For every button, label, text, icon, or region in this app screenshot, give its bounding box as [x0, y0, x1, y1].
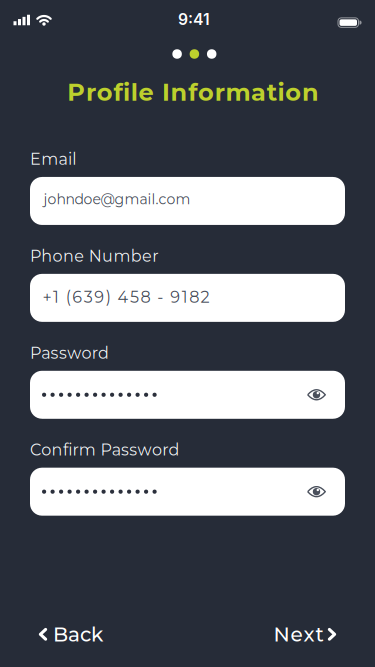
staticText: o [53, 246, 63, 266]
button[interactable]: + [30, 274, 345, 322]
staticText: @ [100, 191, 114, 208]
staticText: s [129, 440, 137, 460]
staticText: i [68, 440, 72, 460]
staticText: j [43, 191, 47, 208]
staticText: r [215, 77, 225, 107]
staticText: . [155, 191, 158, 208]
button[interactable]: N [273, 622, 336, 646]
staticText: h [41, 246, 52, 266]
button[interactable]: Back [39, 622, 103, 646]
staticText: l [72, 149, 76, 169]
button[interactable] [307, 388, 326, 401]
staticText: 9 [170, 287, 180, 307]
staticText: o [285, 77, 301, 107]
staticText: d [98, 343, 109, 363]
staticText: 6 [72, 287, 82, 307]
staticText: 8 [189, 287, 199, 307]
staticText: a [112, 440, 121, 460]
staticText: r [86, 77, 96, 107]
staticText: a [41, 343, 50, 363]
staticText: a [59, 149, 68, 169]
staticText: f [188, 77, 197, 107]
staticText: m [124, 191, 139, 208]
staticText: l [151, 191, 155, 208]
staticText: g [114, 191, 124, 208]
staticText: x [303, 622, 314, 646]
staticText: 4 [118, 287, 129, 307]
staticText: w [138, 440, 152, 460]
staticText: + [42, 287, 51, 307]
staticText: w [67, 343, 81, 363]
staticText: c [158, 191, 166, 208]
staticText: 1 [53, 287, 59, 307]
staticText: 5 [130, 287, 139, 307]
staticText: ( [66, 287, 71, 307]
staticText: P [100, 440, 111, 460]
staticText: N [273, 622, 289, 646]
staticText: P [30, 246, 41, 266]
staticText: e [92, 191, 100, 208]
staticText: o [41, 440, 51, 460]
button[interactable] [30, 371, 345, 419]
staticText: l [131, 77, 138, 107]
staticText: f [113, 77, 122, 107]
staticText: r [72, 440, 78, 460]
staticText: 2 [201, 287, 210, 307]
staticText: m [41, 149, 58, 169]
staticText: e [290, 622, 302, 646]
staticText: r [152, 246, 158, 266]
staticText: e [74, 246, 84, 266]
staticText: s [59, 343, 67, 363]
button[interactable] [30, 468, 345, 516]
staticText: d [74, 191, 83, 208]
staticText: e [142, 246, 152, 266]
staticText: n [63, 246, 74, 266]
staticText: I [162, 77, 170, 107]
staticText: f [63, 440, 68, 460]
staticText: i [68, 149, 72, 169]
staticText: Back [53, 622, 103, 646]
staticText: s [51, 343, 59, 363]
staticText: i [277, 77, 284, 107]
staticText: 9 [94, 287, 104, 307]
staticText: C [30, 440, 41, 460]
staticText: r [162, 440, 168, 460]
staticText: n [65, 191, 74, 208]
staticText: a [139, 191, 147, 208]
button[interactable]: j [30, 177, 345, 225]
staticText: a [251, 77, 266, 107]
staticText: E [30, 149, 41, 169]
staticText: o [152, 440, 162, 460]
staticText: o [83, 191, 92, 208]
staticText: m [113, 246, 130, 266]
staticText: m [79, 440, 96, 460]
staticText: ) [106, 287, 111, 307]
staticText: u [102, 246, 113, 266]
staticText: 1 [182, 287, 188, 307]
staticText: - [157, 287, 163, 307]
staticText: d [168, 440, 179, 460]
staticText: t [267, 77, 277, 107]
staticText: 3 [84, 287, 93, 307]
staticText: i [147, 191, 151, 208]
staticText: o [47, 191, 56, 208]
staticText: N [89, 246, 102, 266]
staticText: h [56, 191, 65, 208]
staticText: 8 [140, 287, 150, 307]
staticText: o [81, 343, 91, 363]
staticText: m [175, 191, 190, 208]
button[interactable] [307, 485, 326, 498]
staticText: n [171, 77, 188, 107]
staticText: r [92, 343, 98, 363]
staticText: n [52, 440, 63, 460]
staticText: t [315, 622, 323, 646]
staticText: s [121, 440, 129, 460]
staticText: o [198, 77, 214, 107]
